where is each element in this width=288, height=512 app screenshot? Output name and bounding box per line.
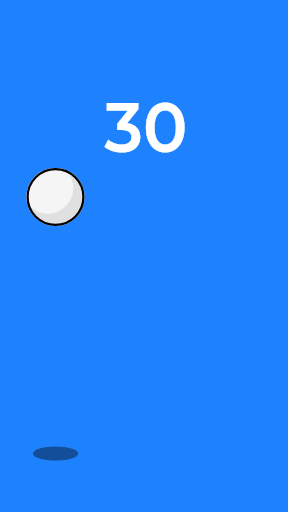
button[interactable]: Tap to make the ball jump (0, 0, 288, 512)
